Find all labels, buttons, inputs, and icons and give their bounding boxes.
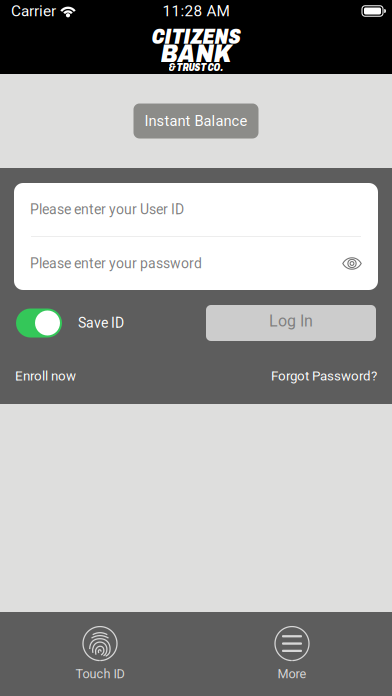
button[interactable]: Enroll now [15, 366, 76, 386]
staticText: Carrier [11, 2, 56, 20]
staticText: Enroll now [15, 368, 76, 384]
button[interactable]: Log In [206, 305, 376, 341]
staticText: More [277, 667, 306, 681]
button[interactable]: More [192, 619, 392, 689]
staticText: Forgot Password? [271, 368, 377, 384]
staticText: BANK [160, 40, 231, 68]
button[interactable]: Save ID [16, 305, 124, 341]
staticText: CITIZENS [151, 24, 240, 48]
staticText: Please enter your password [30, 255, 202, 272]
button[interactable]: Instant Balance [133, 103, 258, 138]
button[interactable]: Touch ID [0, 619, 200, 689]
staticText: Instant Balance [144, 112, 247, 130]
button[interactable]: Please enter your password [14, 237, 378, 290]
staticText: Please enter your User ID [30, 201, 184, 218]
staticText: 11:28 AM [162, 2, 229, 20]
staticText: Touch ID [75, 667, 124, 681]
staticText: Log In [269, 312, 313, 330]
staticText: Save ID [78, 315, 124, 331]
button[interactable]: Forgot Password? [271, 366, 377, 386]
button[interactable]: Please enter your User ID [14, 183, 378, 236]
staticText: & TRUST CO. [168, 62, 223, 73]
